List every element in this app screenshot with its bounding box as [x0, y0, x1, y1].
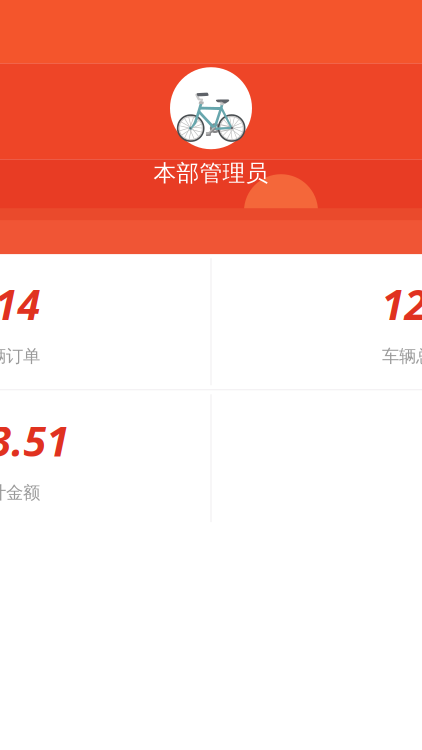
staticText: 累计金额 [0, 482, 40, 503]
staticText: 873.51 [0, 413, 69, 468]
staticText: 🚲 [173, 73, 249, 143]
staticText: 本部管理员 [153, 159, 268, 187]
staticText: 车辆订单 [0, 345, 40, 367]
staticText: 714 [0, 277, 40, 331]
staticText: 128 [381, 277, 422, 331]
staticText: 车辆总数 [382, 345, 422, 367]
